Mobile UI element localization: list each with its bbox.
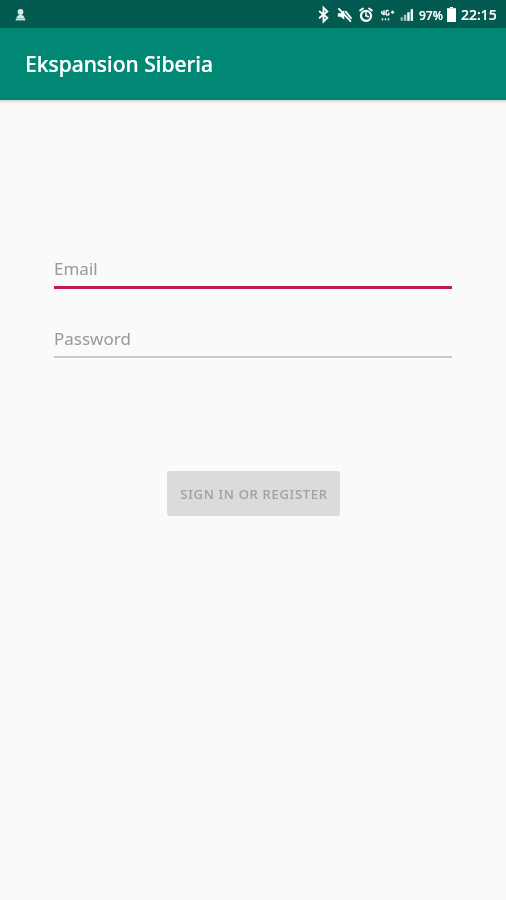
staticText: Password [54, 327, 131, 350]
staticText: 22:15 [461, 5, 497, 24]
button[interactable]: Password [54, 325, 452, 358]
button[interactable]: Sign in or register [167, 471, 340, 516]
staticText: SIGN IN OR REGISTER [180, 485, 328, 503]
staticText: Ekspansion Siberia [25, 50, 214, 79]
staticText: 97% [419, 7, 443, 23]
staticText: Email [54, 257, 98, 280]
button[interactable]: Email [54, 255, 452, 289]
